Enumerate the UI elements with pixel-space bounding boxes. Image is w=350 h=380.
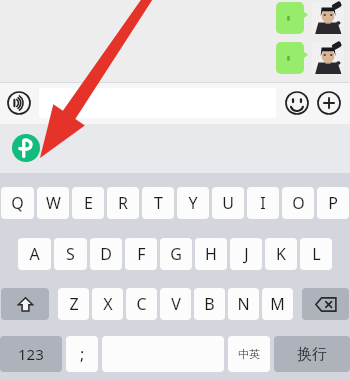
staticText: I [260,192,266,214]
button[interactable]: D [90,238,122,270]
button[interactable]: Backspace [302,288,349,320]
button[interactable]: J [230,238,262,270]
staticText: C [136,293,147,315]
staticText: P [328,192,338,214]
button[interactable]: C [126,288,157,320]
button[interactable] [276,2,308,34]
button[interactable]: O [282,187,314,219]
button[interactable]: Q [1,187,34,219]
button[interactable]: Voice input [6,90,32,116]
button[interactable]: Emoji [284,90,310,116]
button[interactable]: U [212,187,244,219]
staticText: W [46,192,61,214]
button[interactable]: V [160,288,191,320]
staticText: D [100,243,112,265]
button[interactable]: Chinese English toggle [228,336,270,372]
button[interactable]: More options [316,90,342,116]
staticText: K [276,243,286,265]
staticText: T [154,192,163,214]
staticText: H [205,243,217,265]
staticText: Z [69,293,79,315]
button[interactable]: W [37,187,69,219]
button[interactable]: Contact avatar [312,42,344,74]
staticText: Y [188,192,198,214]
staticText: 中英 [238,347,260,361]
button[interactable]: I [247,187,279,219]
staticText: B [204,293,215,315]
button[interactable]: F [125,238,157,270]
staticText: Q [11,192,24,214]
button[interactable]: N [228,288,259,320]
button[interactable]: S [54,238,87,270]
staticText: 123 [18,344,44,364]
staticText: E [84,192,93,214]
button[interactable]: 换行 [274,336,350,372]
button[interactable]: Y [177,187,209,219]
button[interactable]: Z [58,288,89,320]
button[interactable]: Contact avatar [312,2,344,34]
button[interactable]: 123 [0,336,62,372]
staticText: U [222,192,234,214]
staticText: ; [80,343,85,365]
button[interactable]: L [300,238,332,270]
staticText: V [171,293,181,315]
staticText: S [66,243,75,265]
button[interactable]: P [317,187,349,219]
button[interactable]: M [262,288,293,320]
button[interactable]: Message input field [39,88,276,118]
staticText: M [270,293,285,315]
staticText: N [237,293,250,315]
button[interactable] [276,42,308,74]
button[interactable]: A [18,238,51,270]
button[interactable]: K [265,238,297,270]
button[interactable]: H [195,238,227,270]
button[interactable]: Input method badge [12,134,40,162]
staticText: J [244,243,249,265]
button[interactable]: R [107,187,139,219]
staticText: F [137,243,146,265]
staticText: L [312,243,321,265]
staticText: A [29,243,40,265]
staticText: R [118,192,128,214]
button[interactable]: E [72,187,104,219]
button[interactable]: X [92,288,123,320]
button[interactable]: B [194,288,225,320]
button[interactable]: G [160,238,192,270]
staticText: 换行 [297,345,327,364]
button[interactable]: Shift [1,288,49,320]
staticText: G [170,243,182,265]
staticText: X [103,293,113,315]
button[interactable]: ; [66,336,98,372]
staticText: O [292,192,305,214]
button[interactable]: T [142,187,174,219]
